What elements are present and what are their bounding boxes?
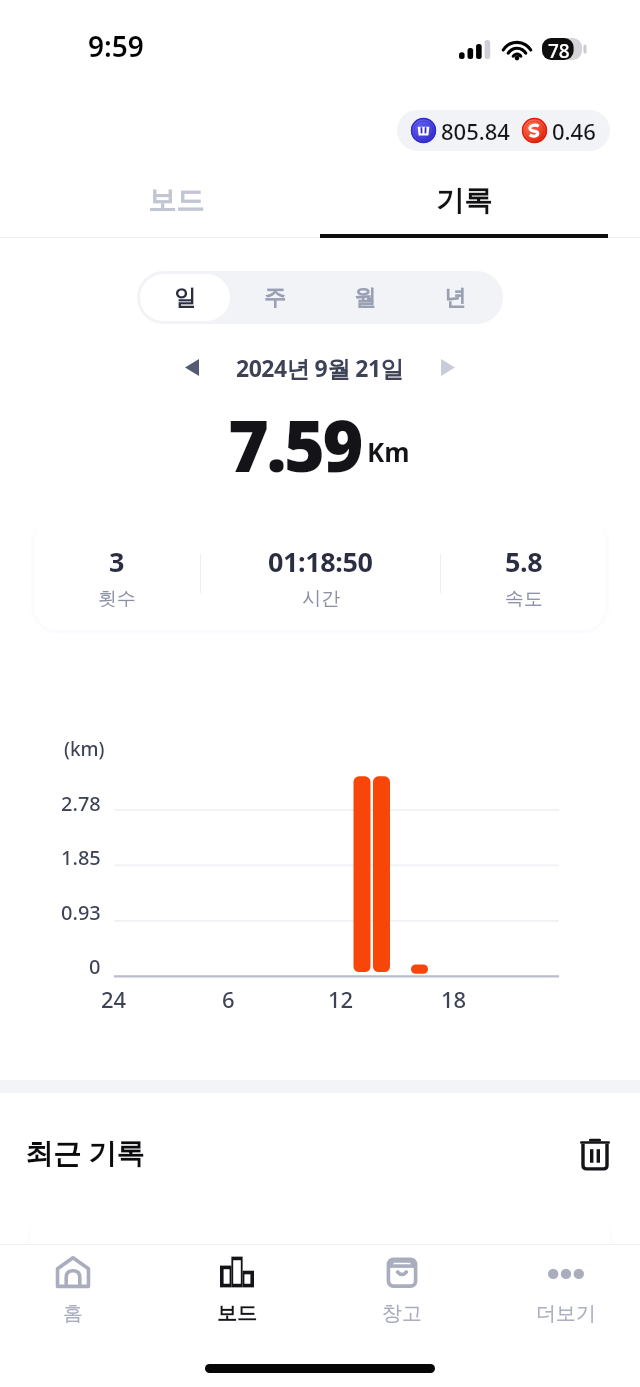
staticText: 0.46 bbox=[552, 116, 596, 146]
staticText: (km) bbox=[64, 736, 105, 762]
staticText: 일 bbox=[174, 284, 196, 312]
button[interactable]: 더보기 bbox=[508, 1241, 624, 1341]
staticText: 0 bbox=[89, 953, 101, 980]
button[interactable]: 주 bbox=[230, 274, 320, 321]
staticText: Km bbox=[367, 434, 410, 469]
staticText: 월 bbox=[354, 284, 376, 312]
staticText: 0.93 bbox=[61, 899, 101, 926]
staticText: 더보기 bbox=[536, 1301, 596, 1326]
staticText: 1.85 bbox=[61, 844, 101, 871]
button[interactable]: Delete records bbox=[571, 1129, 619, 1177]
staticText: 창고 bbox=[382, 1301, 422, 1326]
button[interactable]: 805.84 bbox=[397, 110, 610, 151]
staticText: 기록 bbox=[436, 183, 492, 218]
button[interactable]: 창고 bbox=[344, 1241, 460, 1341]
staticText: 9:59 bbox=[88, 27, 144, 65]
staticText: 속도 bbox=[505, 587, 543, 611]
staticText: 5.8 bbox=[505, 543, 543, 580]
staticText: 최근 기록 bbox=[25, 1133, 145, 1171]
button[interactable]: 보드 bbox=[179, 1241, 295, 1341]
staticText: 2024년 9월 21일 bbox=[236, 352, 404, 383]
staticText: 805.84 bbox=[441, 116, 510, 146]
staticText: 12 bbox=[328, 984, 354, 1014]
button[interactable]: 일 bbox=[140, 274, 230, 321]
button[interactable]: Next day bbox=[427, 346, 469, 388]
button[interactable]: 보드 bbox=[32, 154, 320, 238]
staticText: 18 bbox=[441, 984, 467, 1014]
button[interactable]: 기록 bbox=[320, 154, 608, 238]
staticText: 3 bbox=[109, 543, 125, 580]
staticText: 보드 bbox=[148, 183, 204, 218]
staticText: 횟수 bbox=[98, 587, 136, 611]
staticText: 주 bbox=[264, 284, 286, 312]
staticText: 24 bbox=[101, 984, 127, 1014]
staticText: 홈 bbox=[63, 1301, 83, 1326]
staticText: 6 bbox=[222, 984, 235, 1014]
staticText: 78 bbox=[548, 38, 570, 60]
staticText: 7.59 bbox=[228, 397, 361, 479]
staticText: 시간 bbox=[302, 587, 340, 611]
staticText: 년 bbox=[444, 284, 466, 312]
button[interactable]: Previous day bbox=[171, 346, 213, 388]
button[interactable]: 년 bbox=[410, 274, 500, 321]
staticText: 2.78 bbox=[61, 790, 101, 817]
button[interactable]: 월 bbox=[320, 274, 410, 321]
staticText: 01:18:50 bbox=[268, 543, 373, 580]
button[interactable]: 홈 bbox=[15, 1241, 131, 1341]
staticText: 보드 bbox=[217, 1301, 257, 1326]
